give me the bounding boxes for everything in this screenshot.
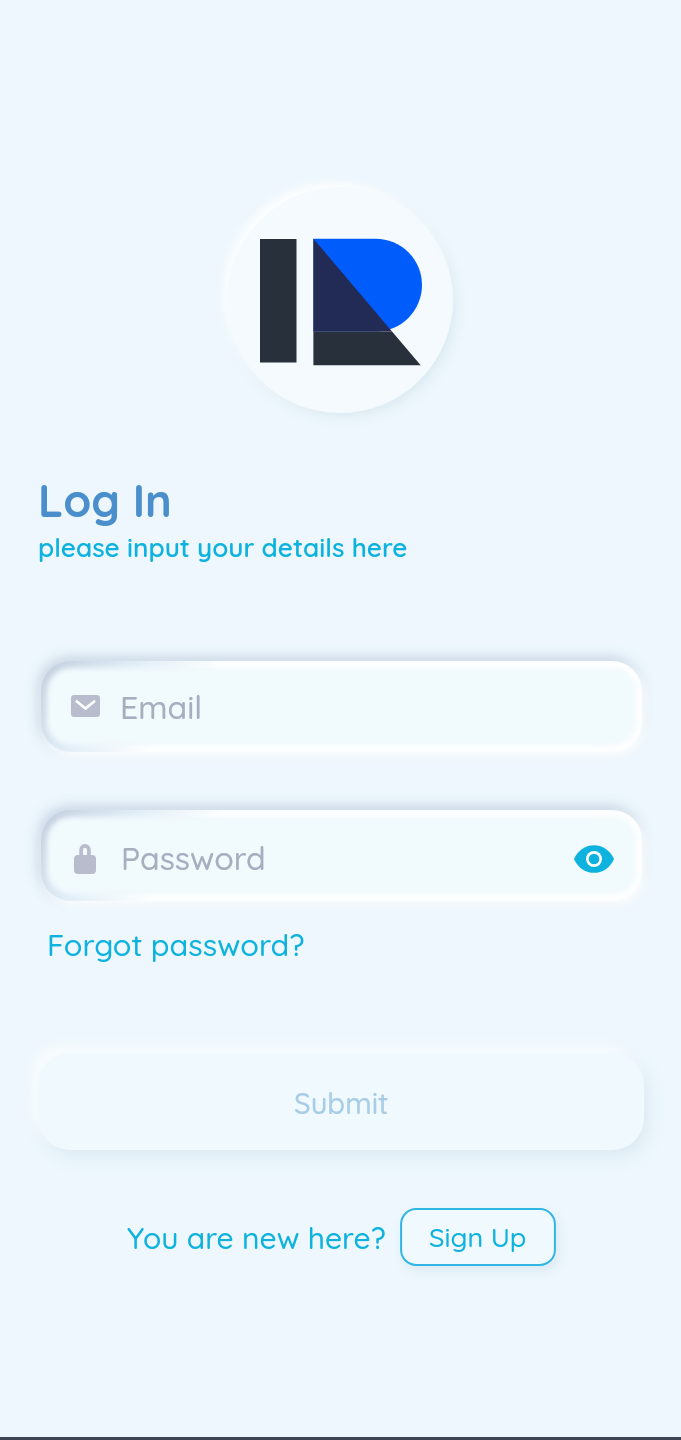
button[interactable]: Password (41, 810, 642, 901)
button[interactable]: Sign Up (400, 1208, 556, 1266)
staticText: Submit (294, 1085, 389, 1121)
button[interactable]: Submit (38, 1053, 644, 1150)
staticText: Email (120, 687, 203, 727)
button[interactable]: Forgot password? (44, 923, 308, 965)
staticText: Password (121, 838, 266, 878)
staticText: You are new here? (127, 1219, 386, 1257)
button[interactable]: Email (41, 661, 642, 752)
staticText: Sign Up (429, 1220, 527, 1254)
button[interactable]: Show password (571, 836, 616, 881)
other: App logo (225, 185, 455, 415)
staticText: Log In (38, 472, 172, 528)
staticText: please input your details here (38, 531, 408, 564)
